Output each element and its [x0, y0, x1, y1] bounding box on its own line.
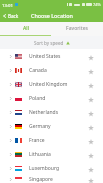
- button[interactable]: Sort by speed: [30, 36, 74, 49]
- button[interactable]: United States: [0, 49, 103, 63]
- button[interactable]: All: [0, 22, 51, 35]
- button[interactable]: Favorite: [86, 107, 96, 117]
- button[interactable]: Favorite: [86, 121, 96, 131]
- staticText: Singapore: [29, 176, 53, 183]
- button[interactable]: Germany: [0, 119, 103, 133]
- button[interactable]: Favorites: [51, 22, 103, 35]
- button[interactable]: Singapore: [0, 175, 103, 183]
- staticText: Germany: [29, 123, 51, 130]
- staticText: Luxembourg: [29, 165, 60, 172]
- button[interactable]: Canada: [0, 63, 103, 77]
- button[interactable]: France: [0, 133, 103, 147]
- button[interactable]: Poland: [0, 91, 103, 105]
- staticText: 13:01: [2, 2, 13, 8]
- button[interactable]: Luxembourg: [0, 161, 103, 175]
- button[interactable]: Favorite: [86, 163, 96, 173]
- button[interactable]: Netherlands: [0, 105, 103, 119]
- button[interactable]: Favorite: [86, 175, 96, 183]
- staticText: Favorites: [66, 25, 88, 32]
- button[interactable]: Favorite: [86, 135, 96, 145]
- staticText: All: [23, 25, 29, 32]
- staticText: Canada: [29, 67, 47, 74]
- button[interactable]: Favorite: [86, 65, 96, 75]
- staticText: 74%: [93, 2, 101, 7]
- button[interactable]: Favorite: [86, 51, 96, 61]
- button[interactable]: Lithuania: [0, 147, 103, 161]
- staticText: Netherlands: [29, 109, 59, 116]
- staticText: France: [29, 137, 45, 144]
- button[interactable]: Favorite: [86, 79, 96, 89]
- staticText: United States: [29, 53, 61, 60]
- button[interactable]: Favorite: [86, 93, 96, 103]
- staticText: United Kingdom: [29, 81, 68, 88]
- staticText: Lithuania: [29, 151, 51, 158]
- staticText: Sort by speed: [34, 40, 64, 46]
- staticText: Back: [8, 13, 19, 19]
- staticText: Choose Location: [31, 12, 73, 19]
- button[interactable]: Favorite: [86, 149, 96, 159]
- staticText: Poland: [29, 95, 46, 102]
- button[interactable]: Back: [0, 9, 23, 22]
- button[interactable]: United Kingdom: [0, 77, 103, 91]
